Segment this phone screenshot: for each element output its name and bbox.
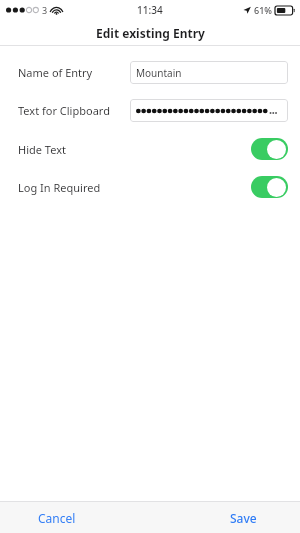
button[interactable]: Cancel bbox=[0, 502, 150, 533]
button[interactable]: Log In Required bbox=[251, 176, 288, 198]
staticText: Text for Clipboard bbox=[18, 103, 110, 118]
staticText: Log In Required bbox=[18, 180, 101, 195]
staticText: Save bbox=[230, 510, 257, 526]
staticText: Cancel bbox=[38, 510, 76, 526]
button[interactable]: Save bbox=[150, 502, 300, 533]
staticText: Edit existing Entry bbox=[96, 25, 205, 41]
staticText: 3 bbox=[42, 4, 48, 16]
button[interactable]: Hide Text bbox=[251, 138, 288, 160]
button[interactable] bbox=[130, 99, 288, 122]
staticText: 11:34 bbox=[137, 3, 163, 17]
staticText: 61% bbox=[254, 4, 272, 16]
staticText: Mountain bbox=[136, 66, 182, 80]
staticText: Name of Entry bbox=[18, 65, 93, 80]
button[interactable]: Mountain bbox=[130, 61, 288, 84]
staticText: Hide Text bbox=[18, 142, 66, 157]
